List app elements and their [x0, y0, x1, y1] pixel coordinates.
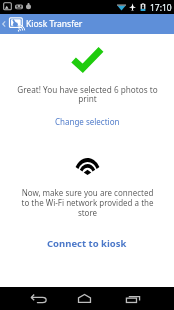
staticText: 17:10	[150, 2, 172, 14]
button[interactable]: Back	[16, 287, 62, 310]
staticText: Kiosk Transfer	[26, 18, 83, 30]
button[interactable]: Change selection	[44, 114, 130, 128]
staticText: Great! You have selected 6 photos to pri…	[15, 84, 160, 104]
staticText: Change selection	[55, 116, 120, 127]
staticText: Now, make sure you are connected to the …	[17, 187, 158, 218]
staticText: Connect to kiosk	[47, 237, 127, 250]
button[interactable]: Home	[61, 287, 107, 310]
button[interactable]: Connect to kiosk	[40, 235, 134, 251]
button[interactable]: Navigate up	[0, 14, 26, 34]
button[interactable]: Recent apps	[110, 287, 156, 310]
